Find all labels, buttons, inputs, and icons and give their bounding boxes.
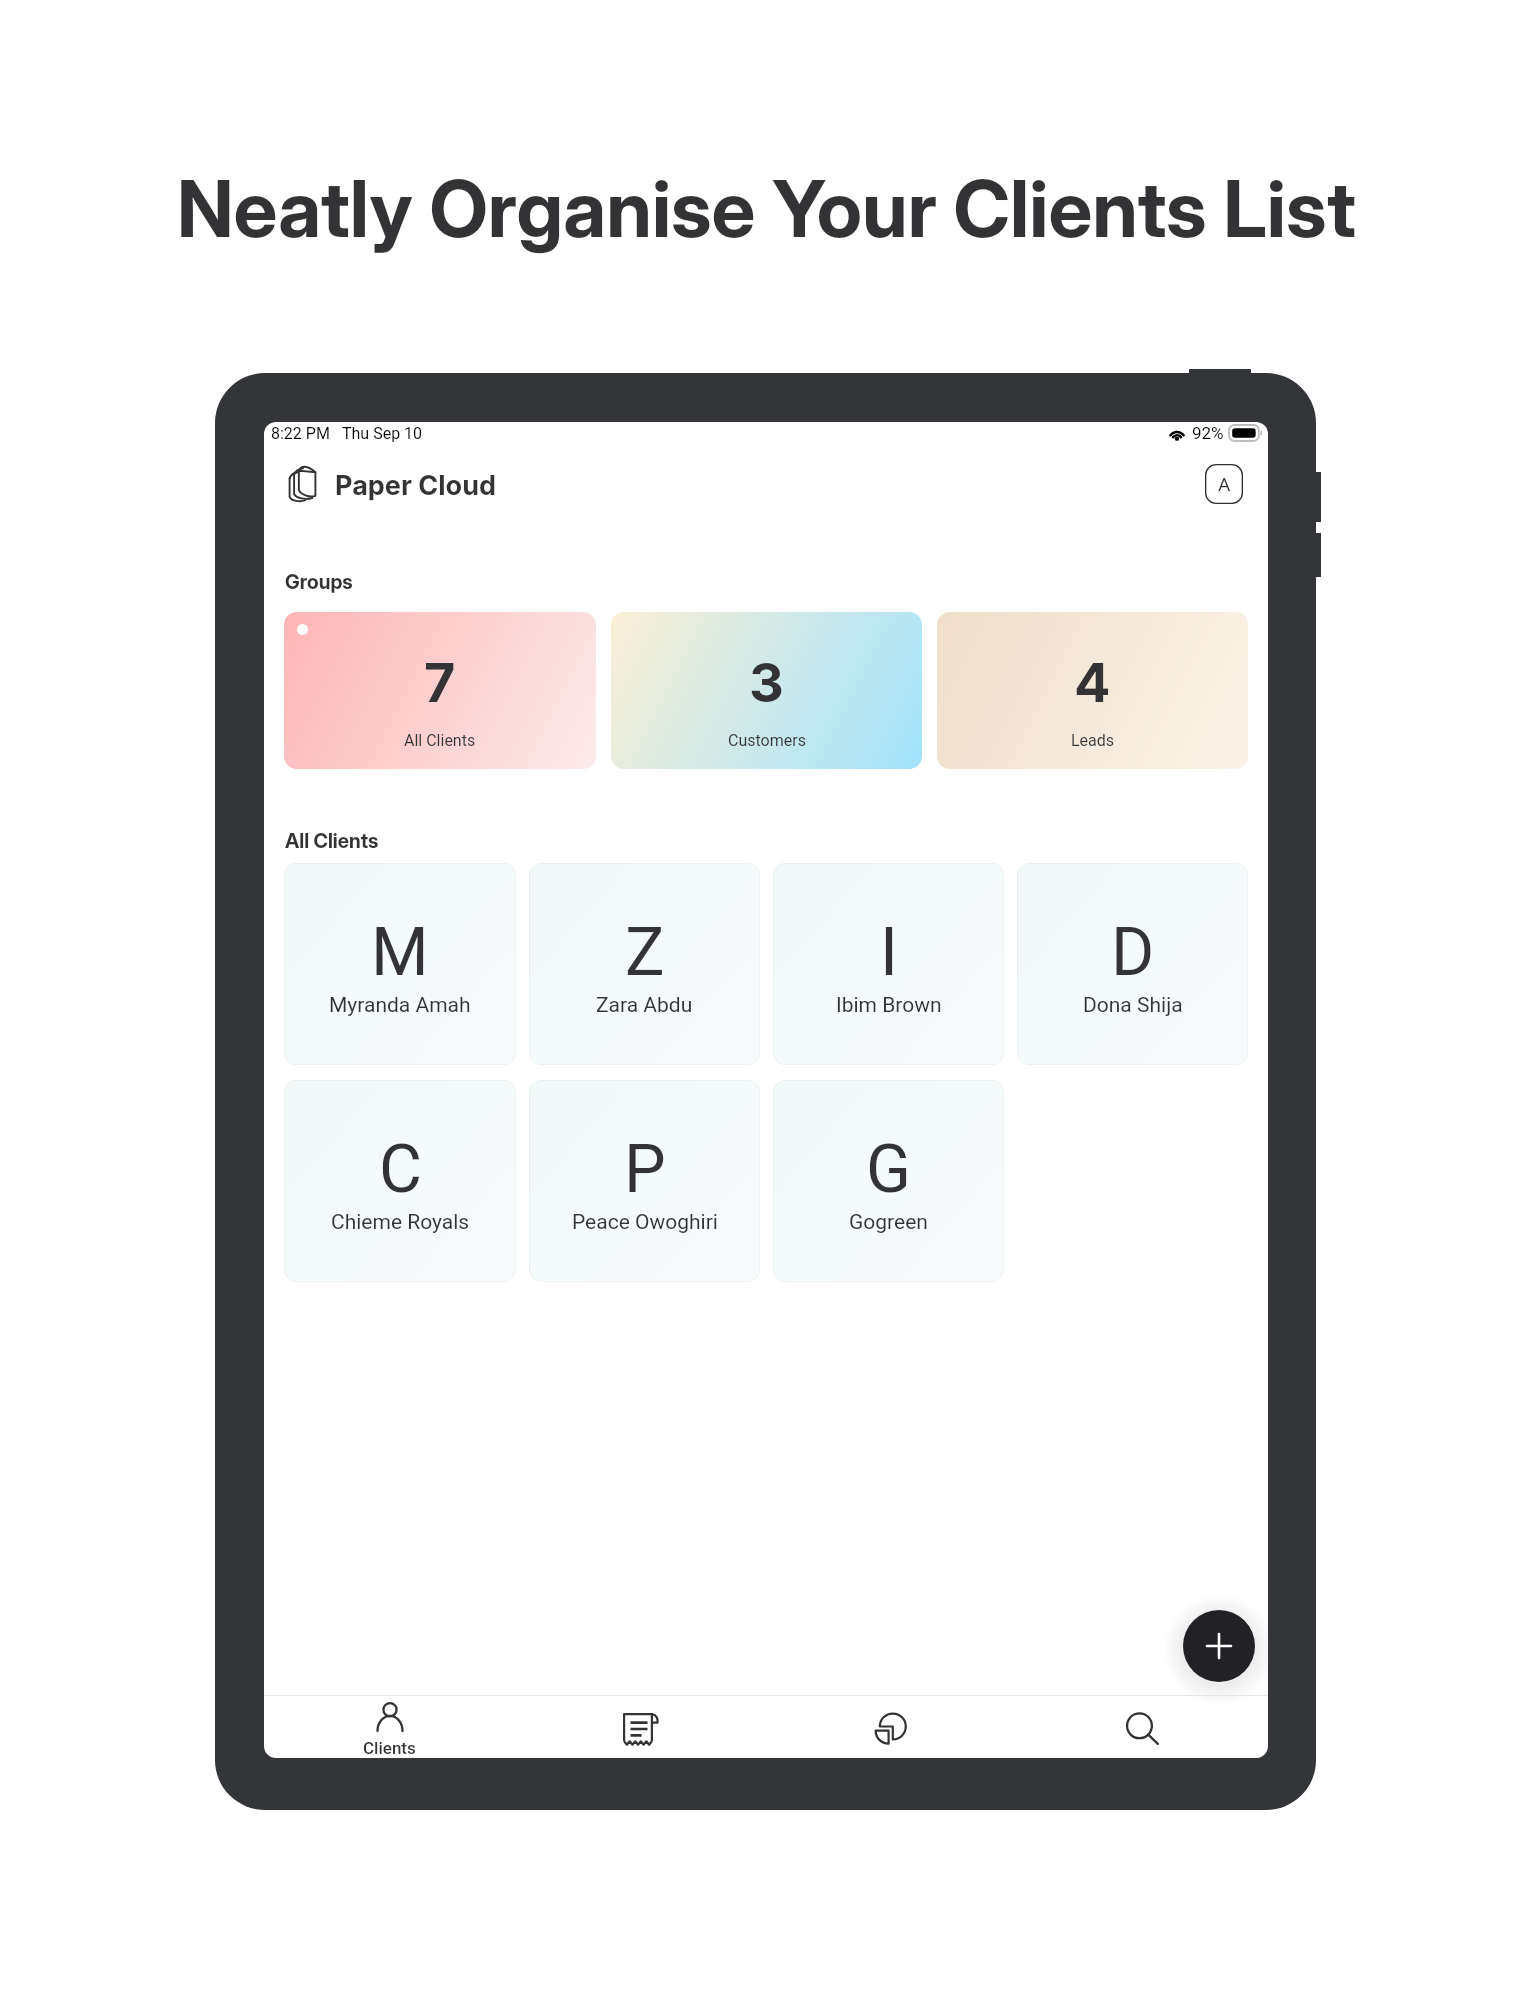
staticText: Leads [1071,731,1115,750]
staticText: I [880,914,898,991]
staticText: P [624,1131,666,1208]
staticText: 3 [749,650,784,715]
button[interactable]: Invoices [515,1696,766,1758]
staticText: Zara Abdu [596,993,693,1018]
button[interactable]: 4 [937,612,1248,769]
button[interactable]: I [773,863,1004,1065]
button[interactable]: G [773,1080,1004,1282]
staticText: Chieme Royals [331,1210,470,1235]
button[interactable]: 3 [611,612,922,769]
staticText: 8:22 PM [271,424,330,443]
staticText: Ibim Brown [836,993,942,1018]
button[interactable]: M [284,863,516,1065]
staticText: A [1218,473,1231,495]
staticText: 92% [1192,423,1224,443]
staticText: Myranda Amah [329,993,471,1018]
button[interactable]: Add client [1183,1610,1255,1682]
button[interactable]: P [529,1080,760,1282]
staticText: D [1111,914,1155,991]
staticText: Thu Sep 10 [342,424,423,443]
staticText: Dona Shija [1083,993,1183,1018]
staticText: Gogreen [849,1210,928,1235]
staticText: C [379,1131,422,1208]
staticText: 4 [1074,650,1111,715]
button[interactable]: Clients [264,1696,515,1758]
button[interactable]: Z [529,863,760,1065]
button[interactable]: Search [1017,1696,1268,1758]
button[interactable]: Reports [766,1696,1017,1758]
staticText: Neatly Organise Your Clients List [177,161,1356,255]
staticText: Peace Owoghiri [572,1210,718,1235]
staticText: Z [625,914,665,991]
staticText: 7 [424,650,456,715]
button[interactable]: C [284,1080,516,1282]
staticText: Groups [285,570,353,594]
staticText: M [371,914,429,991]
staticText: All Clients [404,731,476,750]
staticText: Clients [363,1738,416,1758]
staticText: Customers [728,731,806,750]
staticText: Paper Cloud [335,469,496,502]
staticText: All Clients [285,829,379,853]
staticText: G [866,1131,911,1208]
button[interactable]: D [1017,863,1248,1065]
button[interactable]: Account [1205,464,1243,504]
button[interactable]: 7 [284,612,596,769]
